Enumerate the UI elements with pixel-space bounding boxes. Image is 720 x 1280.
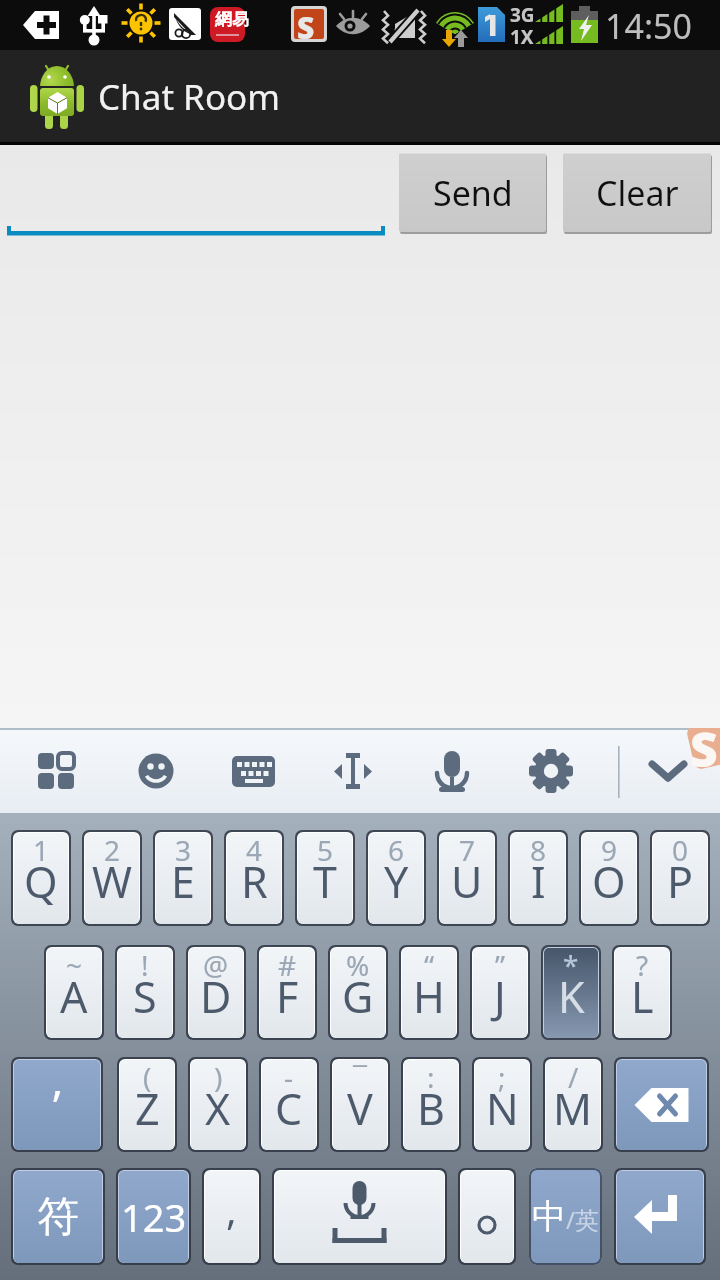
button[interactable]: ? — [615, 948, 669, 1038]
button[interactable]: 8 — [511, 833, 565, 924]
button[interactable]: Cursor — [300, 728, 400, 813]
button[interactable] — [617, 1060, 706, 1150]
staticText: % — [346, 948, 370, 984]
button[interactable] — [275, 1171, 444, 1263]
staticText: , — [226, 1182, 237, 1236]
button[interactable]: / — [546, 1060, 600, 1150]
staticText: Clear — [596, 170, 679, 216]
staticText: S — [133, 967, 157, 1026]
button[interactable]: : — [404, 1060, 458, 1150]
staticText: G — [342, 967, 374, 1026]
staticText: S — [690, 728, 718, 781]
button[interactable]: ( — [120, 1060, 174, 1150]
staticText: A — [60, 967, 88, 1026]
button[interactable]: @ — [189, 948, 243, 1038]
staticText: D — [200, 967, 232, 1026]
button[interactable]: 6 — [369, 833, 423, 924]
button[interactable]: 5 — [298, 833, 352, 924]
button[interactable]: , — [205, 1171, 258, 1263]
button[interactable]: 符 — [14, 1171, 102, 1263]
button[interactable]: 7 — [440, 833, 494, 924]
staticText: 6 — [388, 833, 405, 869]
button[interactable]: Keyboard layout — [200, 728, 300, 813]
button[interactable]: 0 — [653, 833, 707, 924]
staticText: ~ — [66, 948, 83, 984]
button[interactable]: * — [544, 948, 598, 1038]
staticText: M — [553, 1079, 593, 1138]
staticText: ’ — [53, 1076, 61, 1135]
staticText: V — [347, 1079, 373, 1138]
staticText: * — [563, 948, 579, 984]
button[interactable] — [461, 1171, 513, 1263]
staticText: H — [413, 967, 445, 1026]
staticText: P — [667, 852, 694, 911]
staticText: 4 — [246, 833, 263, 869]
button[interactable]: Emoji — [100, 728, 200, 813]
staticText: 符 — [37, 1191, 79, 1244]
staticText: 8 — [530, 833, 547, 869]
button[interactable]: 1 — [14, 833, 68, 924]
button[interactable]: ) — [191, 1060, 245, 1150]
button[interactable]: ” — [473, 948, 527, 1038]
staticText: R — [241, 852, 268, 911]
staticText: ¯ — [353, 1060, 368, 1096]
button[interactable]: # — [260, 948, 314, 1038]
staticText: S — [297, 7, 315, 48]
button[interactable]: Voice input — [400, 728, 500, 813]
staticText: /英 — [566, 1203, 599, 1236]
staticText: # — [278, 948, 297, 984]
staticText: C — [275, 1079, 303, 1138]
button[interactable] — [617, 1171, 703, 1263]
staticText: 14:50 — [605, 3, 692, 49]
staticText: ; — [498, 1060, 506, 1096]
staticText: @ — [203, 948, 229, 984]
staticText: 1 — [33, 833, 50, 869]
button[interactable]: Send — [399, 153, 546, 232]
staticText: K — [558, 967, 585, 1026]
button[interactable]: Hide keyboard — [618, 728, 718, 813]
staticText: Send — [433, 170, 513, 216]
button[interactable]: Apps — [0, 728, 100, 813]
staticText: X — [205, 1079, 231, 1138]
button[interactable]: “ — [402, 948, 456, 1038]
button[interactable]: ’ — [14, 1060, 100, 1150]
staticText: O — [592, 852, 626, 911]
button[interactable]: ¯ — [333, 1060, 387, 1150]
staticText: 123 — [121, 1191, 187, 1243]
staticText: ! — [141, 948, 149, 984]
button[interactable]: 123 — [119, 1171, 188, 1263]
button[interactable]: 4 — [227, 833, 281, 924]
button[interactable]: ; — [475, 1060, 529, 1150]
staticText: 5 — [317, 833, 334, 869]
staticText: ) — [214, 1060, 223, 1096]
staticText: “ — [424, 948, 435, 984]
staticText: Y — [384, 852, 409, 911]
staticText: 3G — [510, 2, 535, 28]
staticText: N — [486, 1079, 519, 1138]
staticText: 7 — [459, 833, 476, 869]
button[interactable]: 9 — [582, 833, 636, 924]
button[interactable]: - — [262, 1060, 316, 1150]
button[interactable]: 2 — [85, 833, 139, 924]
staticText: 2 — [104, 833, 121, 869]
staticText: 1X — [510, 24, 534, 50]
staticText: 0 — [672, 833, 689, 869]
button[interactable]: 3 — [156, 833, 210, 924]
button[interactable]: ~ — [47, 948, 101, 1038]
staticText: 中 — [532, 1195, 566, 1238]
button[interactable]: Chinese English toggle — [529, 1168, 602, 1265]
staticText: Z — [135, 1079, 160, 1138]
button[interactable]: % — [331, 948, 385, 1038]
staticText: J — [494, 967, 506, 1026]
staticText: 網易 — [215, 9, 249, 30]
staticText: : — [427, 1060, 435, 1096]
staticText: - — [284, 1060, 294, 1096]
button[interactable]: Clear — [563, 153, 711, 232]
staticText: B — [417, 1079, 445, 1138]
staticText: / — [568, 1060, 579, 1096]
staticText: Chat Room — [98, 73, 280, 121]
staticText: F — [276, 967, 299, 1026]
button[interactable]: ! — [118, 948, 172, 1038]
button[interactable]: Settings — [500, 728, 600, 813]
staticText: E — [171, 852, 195, 911]
